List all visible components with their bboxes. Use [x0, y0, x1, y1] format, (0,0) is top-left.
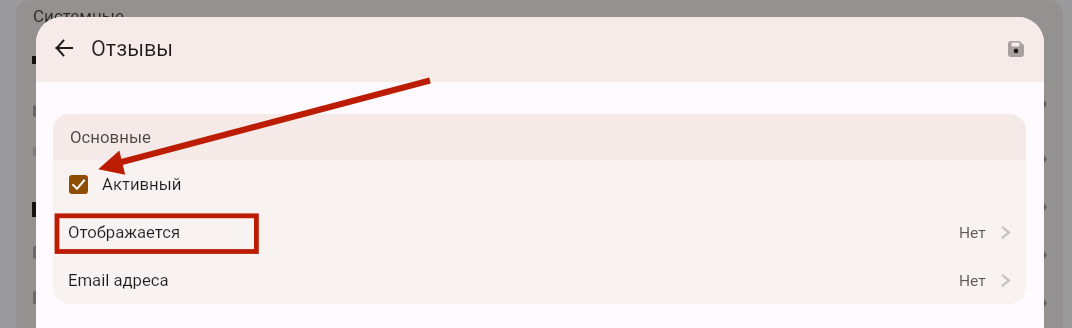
staticText: Email адреса: [68, 271, 169, 291]
staticText: Отзывы: [91, 36, 174, 61]
staticText: Отображается: [68, 223, 181, 243]
button[interactable]: Back: [39, 26, 87, 74]
button[interactable]: Save: [994, 27, 1038, 71]
button[interactable]: Отображается: [53, 208, 1026, 256]
button[interactable]: Активный: [53, 160, 1026, 208]
button[interactable]: Email адреса: [53, 256, 1026, 304]
staticText: Нет: [959, 272, 986, 290]
staticText: Основные: [70, 127, 151, 147]
staticText: Активный: [102, 175, 182, 195]
staticText: Нет: [959, 224, 986, 242]
staticText: Системные: [33, 6, 124, 26]
